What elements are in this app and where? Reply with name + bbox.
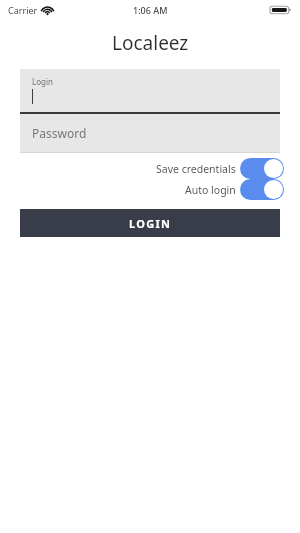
button[interactable]: Auto login [0, 179, 284, 200]
other: Save credentials [240, 158, 284, 179]
staticText: Auto login [185, 183, 236, 197]
button[interactable]: LOGIN [20, 209, 280, 237]
staticText: Carrier [8, 4, 38, 16]
other: Auto login [240, 179, 284, 200]
staticText: 1:06 AM [133, 4, 168, 16]
staticText: Login [32, 76, 53, 87]
staticText: LOGIN [129, 216, 172, 231]
staticText: Localeez [112, 30, 189, 56]
staticText: Password [32, 125, 87, 141]
button[interactable]: Save credentials [0, 158, 284, 179]
staticText: Save credentials [156, 162, 236, 176]
button[interactable]: Password [20, 114, 280, 153]
button[interactable]: Login [20, 69, 280, 114]
